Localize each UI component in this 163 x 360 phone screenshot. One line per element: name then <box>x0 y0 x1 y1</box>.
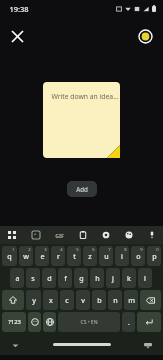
staticText: n <box>113 295 118 305</box>
button[interactable]: Add <box>67 181 97 197</box>
button[interactable]: o <box>131 246 145 266</box>
button[interactable]: k <box>122 268 136 288</box>
button[interactable]: v <box>76 290 90 310</box>
staticText: v <box>81 295 85 305</box>
button[interactable]: Backspace <box>140 290 161 310</box>
staticText: x <box>49 295 53 305</box>
staticText: g <box>79 273 84 283</box>
button[interactable]: Write down an idea… <box>43 82 120 158</box>
button[interactable]: Change language <box>43 312 56 332</box>
button[interactable]: Settings <box>94 226 117 244</box>
button[interactable]: Switch input method <box>141 338 155 352</box>
button[interactable]: Close <box>4 23 30 49</box>
staticText: q <box>7 251 12 261</box>
staticText: CS • EN <box>80 319 98 326</box>
button[interactable]: m <box>124 290 138 310</box>
button[interactable]: n <box>108 290 122 310</box>
staticText: 19:38 <box>9 4 29 14</box>
staticText: p <box>152 251 157 261</box>
staticText: a <box>15 273 20 283</box>
button[interactable]: l <box>138 268 152 288</box>
staticText: c <box>65 295 69 305</box>
button[interactable]: CS • EN <box>58 312 120 332</box>
button[interactable]: Enter <box>137 312 161 332</box>
button[interactable]: y <box>26 290 41 310</box>
staticText: 2 <box>28 247 31 253</box>
staticText: h <box>95 273 100 283</box>
staticText: 1 <box>12 247 15 253</box>
staticText: 4 <box>60 247 63 253</box>
button[interactable]: w <box>19 246 33 266</box>
button[interactable]: h <box>90 268 104 288</box>
button[interactable]: Emoji <box>28 312 41 332</box>
staticText: m <box>128 295 135 305</box>
button[interactable]: p <box>147 246 161 266</box>
button[interactable]: i <box>115 246 129 266</box>
button[interactable]: Themes <box>117 226 140 244</box>
button[interactable]: . <box>122 312 135 332</box>
staticText: i <box>121 251 123 261</box>
staticText: s <box>31 273 35 283</box>
button[interactable]: u <box>99 246 113 266</box>
staticText: z <box>88 251 92 261</box>
staticText: u <box>104 251 109 261</box>
button[interactable]: j <box>106 268 120 288</box>
button[interactable]: Note colour <box>132 23 158 49</box>
button[interactable]: Hide keyboard <box>8 338 22 352</box>
staticText: d <box>47 273 52 283</box>
button[interactable]: x <box>43 290 58 310</box>
staticText: f <box>64 273 67 283</box>
button[interactable]: e <box>35 246 49 266</box>
staticText: t <box>73 251 76 261</box>
staticText: k <box>127 273 131 283</box>
button[interactable]: b <box>92 290 106 310</box>
staticText: 8 <box>124 247 127 253</box>
staticText: 7 <box>108 247 111 253</box>
button[interactable]: z <box>83 246 97 266</box>
button[interactable]: Shift <box>2 290 24 310</box>
button[interactable]: q <box>2 246 17 266</box>
button[interactable]: ?123 <box>2 312 26 332</box>
staticText: . <box>128 318 130 327</box>
staticText: 3 <box>44 247 47 253</box>
staticText: o <box>136 251 141 261</box>
button[interactable]: Voice input <box>140 226 163 244</box>
staticText: r <box>57 251 60 261</box>
staticText: 0 <box>156 247 159 253</box>
staticText: w <box>23 251 29 261</box>
staticText: 6 <box>92 247 95 253</box>
staticText: Add <box>76 185 88 193</box>
staticText: GIF <box>55 232 64 239</box>
button[interactable]: GIF <box>48 226 71 244</box>
staticText: 9 <box>140 247 143 253</box>
staticText: Write down an idea… <box>51 92 119 101</box>
staticText: 5 <box>76 247 79 253</box>
staticText: y <box>32 295 36 305</box>
button[interactable]: s <box>26 268 40 288</box>
button[interactable]: r <box>51 246 65 266</box>
button[interactable]: f <box>58 268 72 288</box>
button[interactable]: g <box>74 268 88 288</box>
button[interactable]: a <box>10 268 24 288</box>
staticText: l <box>144 273 146 283</box>
button[interactable]: c <box>60 290 74 310</box>
button[interactable]: t <box>67 246 81 266</box>
staticText: ?123 <box>8 318 21 326</box>
button[interactable]: Stickers <box>24 226 48 244</box>
button[interactable]: d <box>42 268 56 288</box>
staticText: b <box>97 295 102 305</box>
staticText: j <box>112 273 114 283</box>
button[interactable]: Apps <box>0 226 24 244</box>
button[interactable]: Clipboard <box>71 226 94 244</box>
staticText: e <box>40 251 45 261</box>
